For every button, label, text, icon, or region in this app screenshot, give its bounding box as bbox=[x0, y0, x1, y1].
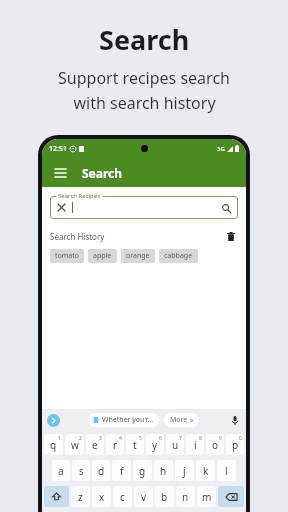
button[interactable]: p bbox=[226, 434, 244, 455]
button[interactable]: cabbage bbox=[159, 249, 198, 263]
staticText: j bbox=[183, 464, 186, 478]
button[interactable]: apple bbox=[88, 249, 117, 263]
button[interactable]: Clear search history bbox=[224, 229, 238, 243]
button[interactable]: tomato bbox=[50, 249, 84, 263]
staticText: p bbox=[232, 438, 239, 452]
button[interactable]: Shift bbox=[44, 486, 69, 507]
staticText: tomato bbox=[55, 251, 79, 261]
button[interactable]: r bbox=[106, 434, 124, 455]
staticText: u bbox=[172, 438, 179, 452]
button[interactable]: m bbox=[197, 486, 216, 507]
staticText: 3 bbox=[99, 435, 102, 442]
staticText: cabbage bbox=[164, 251, 193, 261]
staticText: w bbox=[71, 438, 79, 452]
staticText: h bbox=[160, 464, 167, 478]
staticText: c bbox=[120, 490, 125, 504]
staticText: m bbox=[202, 490, 212, 504]
staticText: orange bbox=[126, 251, 150, 261]
button[interactable]: o bbox=[206, 434, 224, 455]
staticText: with search history bbox=[73, 92, 216, 114]
button[interactable]: Backspace bbox=[218, 486, 244, 507]
staticText: y bbox=[152, 438, 158, 452]
button[interactable]: Clear search bbox=[56, 202, 67, 213]
staticText: Search Recipes bbox=[58, 192, 101, 200]
button[interactable]: Search bbox=[220, 202, 232, 214]
staticText: 7 bbox=[179, 435, 182, 442]
staticText: apple bbox=[93, 251, 112, 261]
staticText: v bbox=[141, 490, 147, 504]
staticText: b bbox=[161, 490, 168, 504]
button[interactable]: a bbox=[52, 460, 70, 481]
button[interactable]: b bbox=[155, 486, 174, 507]
button[interactable]: l bbox=[217, 460, 236, 481]
staticText: q bbox=[50, 438, 57, 452]
button[interactable]: v bbox=[134, 486, 153, 507]
staticText: Search bbox=[82, 165, 123, 181]
staticText: Whether you'r... bbox=[102, 415, 154, 425]
staticText: r bbox=[113, 438, 118, 452]
button[interactable]: n bbox=[176, 486, 195, 507]
staticText: 9 bbox=[219, 435, 222, 442]
staticText: s bbox=[79, 464, 84, 478]
staticText: 12:51 bbox=[49, 144, 67, 154]
button[interactable]: t bbox=[126, 434, 144, 455]
staticText: k bbox=[203, 464, 209, 478]
staticText: 4 bbox=[119, 435, 122, 442]
staticText: d bbox=[98, 464, 105, 478]
button[interactable]: s bbox=[72, 460, 90, 481]
staticText: 8 bbox=[199, 435, 202, 442]
staticText: Search bbox=[99, 21, 190, 58]
button[interactable]: j bbox=[175, 460, 194, 481]
staticText: 2 bbox=[79, 435, 82, 442]
button[interactable]: c bbox=[113, 486, 132, 507]
staticText: i bbox=[194, 438, 197, 452]
button[interactable]: w bbox=[65, 434, 84, 455]
button[interactable]: u bbox=[166, 434, 184, 455]
staticText: 1 bbox=[58, 435, 61, 442]
staticText: f bbox=[120, 464, 124, 478]
staticText: z bbox=[78, 490, 83, 504]
staticText: 0 bbox=[239, 435, 242, 442]
button[interactable]: Clear search bbox=[50, 196, 238, 219]
staticText: a bbox=[58, 464, 64, 478]
staticText: n bbox=[182, 490, 189, 504]
staticText: t bbox=[133, 438, 137, 452]
button[interactable]: Open navigation menu bbox=[51, 164, 69, 182]
button[interactable]: orange bbox=[121, 249, 155, 263]
button[interactable]: h bbox=[154, 460, 173, 481]
button[interactable]: k bbox=[196, 460, 215, 481]
button[interactable]: Expand toolbar bbox=[47, 414, 60, 427]
button[interactable]: y bbox=[146, 434, 164, 455]
button[interactable]: Voice input bbox=[228, 414, 241, 427]
button[interactable]: x bbox=[92, 486, 111, 507]
staticText: More bbox=[170, 415, 188, 425]
button[interactable]: More bbox=[164, 413, 199, 427]
button[interactable]: f bbox=[112, 460, 131, 481]
staticText: g bbox=[139, 464, 146, 478]
button[interactable]: q bbox=[44, 434, 63, 455]
staticText: x bbox=[99, 490, 105, 504]
button[interactable]: e bbox=[86, 434, 104, 455]
staticText: l bbox=[225, 464, 228, 478]
button[interactable]: d bbox=[92, 460, 110, 481]
button[interactable]: g bbox=[133, 460, 152, 481]
button[interactable]: z bbox=[71, 486, 90, 507]
button[interactable]: Whether you'r... bbox=[88, 413, 159, 427]
staticText: o bbox=[212, 438, 219, 452]
button[interactable]: i bbox=[186, 434, 204, 455]
staticText: Search History bbox=[50, 231, 105, 242]
staticText: e bbox=[92, 438, 98, 452]
staticText: 6 bbox=[159, 435, 162, 442]
staticText: 3G bbox=[217, 145, 225, 153]
staticText: Support recipes search bbox=[58, 67, 230, 89]
staticText: 5 bbox=[139, 435, 142, 442]
